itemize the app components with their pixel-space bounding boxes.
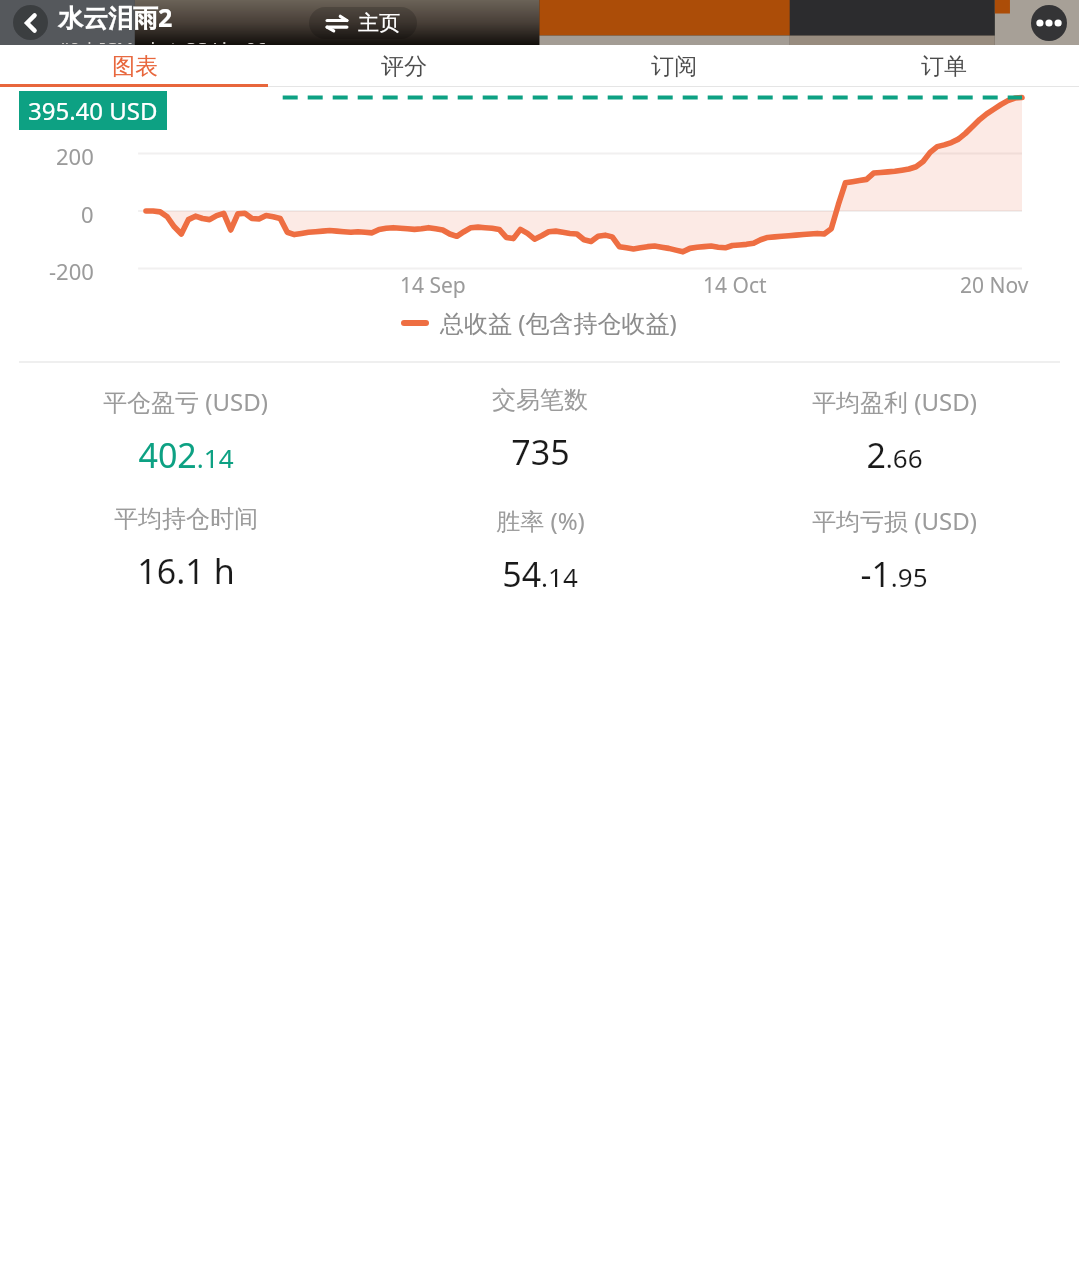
staticText: 订阅 — [651, 52, 697, 81]
staticText: 735 — [511, 429, 570, 475]
staticText: 水云泪雨2 — [58, 0, 173, 34]
staticText: 0 — [81, 199, 94, 229]
button[interactable]: 平均盈利 (USD) — [717, 385, 1071, 478]
staticText: 交易笔数 — [492, 385, 588, 415]
staticText: #9 | ICMarketsSC-Live06 — [58, 37, 267, 44]
staticText: 评分 — [381, 52, 427, 81]
staticText: 平均盈利 (USD) — [812, 385, 977, 418]
button[interactable]: 图表 — [0, 45, 269, 87]
button[interactable]: Back — [13, 5, 48, 40]
staticText: 16.1 h — [137, 548, 235, 594]
button[interactable]: More options — [1031, 5, 1067, 41]
staticText: 2.66 — [866, 432, 923, 478]
staticText: 200 — [56, 141, 94, 171]
staticText: 胜率 (%) — [496, 504, 585, 537]
button[interactable]: 订阅 — [539, 45, 809, 87]
staticText: -1.95 — [860, 551, 928, 597]
staticText: 20 Nov — [960, 271, 1029, 300]
staticText: 14 Oct — [703, 271, 767, 300]
staticText: 54.14 — [502, 551, 578, 597]
staticText: 主页 — [358, 10, 400, 36]
staticText: -200 — [49, 256, 94, 286]
button[interactable]: 平均亏损 (USD) — [717, 504, 1071, 597]
button[interactable]: 评分 — [269, 45, 539, 87]
staticText: 图表 — [112, 52, 158, 81]
button[interactable]: 平仓盈亏 (USD) — [8, 385, 363, 478]
button[interactable]: 主页 — [309, 7, 417, 39]
staticText: 订单 — [921, 52, 967, 81]
staticText: 平均持仓时间 — [114, 504, 258, 534]
staticText: 402.14 — [138, 432, 234, 478]
button[interactable]: 平均持仓时间 — [8, 504, 363, 594]
staticText: 395.40 USD — [28, 94, 158, 127]
staticText: 平均亏损 (USD) — [812, 504, 977, 537]
staticText: 平仓盈亏 (USD) — [103, 385, 268, 418]
staticText: 总收益 (包含持仓收益) — [440, 306, 677, 339]
button[interactable]: 订单 — [809, 45, 1079, 87]
staticText: 14 Sep — [400, 271, 466, 300]
button[interactable]: 交易笔数 — [363, 385, 717, 475]
button[interactable]: 胜率 (%) — [363, 504, 717, 597]
